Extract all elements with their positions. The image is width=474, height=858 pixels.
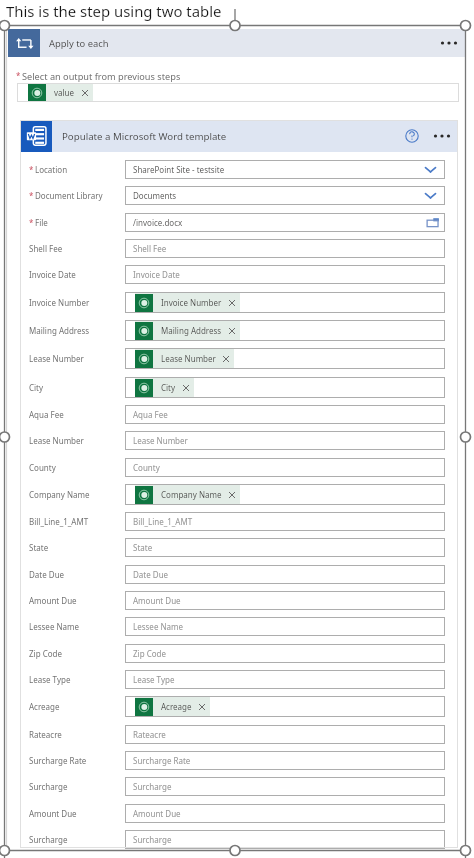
staticText: Lessee Name <box>133 621 184 632</box>
staticText: Mailing Address <box>161 325 222 336</box>
button[interactable]: Rateacre <box>20 725 458 744</box>
button[interactable]: Remove Lease Number <box>221 354 230 363</box>
staticText: * <box>16 70 21 81</box>
staticText: Amount Due <box>133 595 181 606</box>
staticText: Zip Code <box>29 648 62 659</box>
button[interactable]: Acreage <box>20 696 458 717</box>
button[interactable]: Lease Number <box>20 431 458 450</box>
button[interactable]: Bill_Line_1_AMT <box>20 512 458 531</box>
button[interactable]: * <box>20 213 458 232</box>
button[interactable]: Surcharge Rate <box>20 751 458 770</box>
staticText: City <box>29 382 44 393</box>
button[interactable]: Remove Acreage <box>197 702 206 711</box>
button[interactable]: Remove Invoice Number <box>227 298 236 307</box>
button[interactable]: * <box>20 160 458 179</box>
button[interactable]: Amount Due <box>20 591 458 610</box>
button[interactable]: City <box>135 378 194 397</box>
button[interactable]: More commands <box>429 123 455 149</box>
staticText: /invoice.docx <box>133 217 183 228</box>
button[interactable]: Lessee Name <box>20 617 458 636</box>
button[interactable]: Apply to each <box>8 29 465 57</box>
staticText: Date Due <box>133 569 169 580</box>
staticText: Surcharge <box>29 834 68 845</box>
staticText: State <box>29 542 49 553</box>
button[interactable]: Acreage <box>135 697 210 716</box>
staticText: Surcharge <box>133 781 172 792</box>
button[interactable]: Invoice Number <box>20 292 458 313</box>
staticText: Select an output from previous steps <box>22 70 181 83</box>
staticText: Zip Code <box>133 648 166 659</box>
staticText: Apply to each <box>49 37 109 50</box>
button[interactable]: Surcharge <box>20 830 458 849</box>
staticText: Shell Fee <box>29 243 63 254</box>
button[interactable]: Amount Due <box>20 804 458 823</box>
staticText: Date Due <box>29 569 65 580</box>
button[interactable]: Populate a Microsoft Word template <box>20 120 458 152</box>
staticText: Lease Type <box>29 674 71 685</box>
staticText: Acreage <box>161 701 192 712</box>
staticText: Aqua Fee <box>29 409 64 420</box>
staticText: Amount Due <box>29 808 77 819</box>
button[interactable]: Mailing Address <box>20 320 458 341</box>
staticText: State <box>133 542 153 553</box>
staticText: Surcharge <box>29 781 68 792</box>
button[interactable]: Shell Fee <box>20 239 458 258</box>
button[interactable]: More commands <box>435 29 463 57</box>
button[interactable]: * <box>20 186 458 205</box>
button[interactable]: Company Name <box>20 484 458 505</box>
button[interactable]: City <box>20 377 458 398</box>
button[interactable]: Lease Number <box>20 348 458 369</box>
button[interactable]: Remove City <box>181 383 190 392</box>
staticText: Populate a Microsoft Word template <box>62 130 227 143</box>
button[interactable]: value <box>28 84 93 101</box>
button[interactable]: Invoice Number <box>135 293 240 312</box>
staticText: Invoice Number <box>161 297 222 308</box>
button[interactable]: Help <box>399 123 425 149</box>
button[interactable]: Aqua Fee <box>20 405 458 424</box>
staticText: Rateacre <box>133 729 166 740</box>
staticText: * <box>29 164 34 175</box>
staticText: Company Name <box>29 489 90 500</box>
staticText: Surcharge <box>133 834 172 845</box>
staticText: File <box>35 217 48 228</box>
button[interactable]: value <box>17 83 459 102</box>
staticText: Lease Number <box>29 353 84 364</box>
staticText: Bill_Line_1_AMT <box>29 516 89 527</box>
staticText: Invoice Date <box>29 269 76 280</box>
button[interactable]: Mailing Address <box>135 321 240 340</box>
staticText: County <box>133 462 160 473</box>
button[interactable]: Invoice Date <box>20 265 458 284</box>
staticText: SharePoint Site - testsite <box>133 164 225 175</box>
button[interactable]: Remove Company Name <box>227 490 236 499</box>
staticText: County <box>29 462 56 473</box>
staticText: Company Name <box>161 489 222 500</box>
button[interactable]: Company Name <box>135 485 240 504</box>
staticText: Lease Number <box>133 435 188 446</box>
staticText: Amount Due <box>133 808 181 819</box>
staticText: Lease Number <box>29 435 84 446</box>
staticText: This is the step using two table <box>6 1 222 21</box>
button[interactable]: County <box>20 458 458 477</box>
staticText: * <box>29 217 34 228</box>
staticText: Bill_Line_1_AMT <box>133 516 193 527</box>
staticText: value <box>54 87 75 98</box>
staticText: Surcharge Rate <box>133 755 191 766</box>
button[interactable]: Surcharge <box>20 777 458 796</box>
button[interactable]: Remove value <box>80 88 89 97</box>
button[interactable]: Zip Code <box>20 644 458 663</box>
staticText: Shell Fee <box>133 243 167 254</box>
button[interactable]: State <box>20 538 458 557</box>
button[interactable]: Date Due <box>20 565 458 584</box>
staticText: City <box>161 382 176 393</box>
button[interactable]: Remove Mailing Address <box>227 326 236 335</box>
button[interactable]: Lease Type <box>20 670 458 689</box>
staticText: Lease Number <box>161 353 216 364</box>
staticText: Amount Due <box>29 595 77 606</box>
button[interactable]: Lease Number <box>135 349 234 368</box>
staticText: Document Library <box>35 190 103 201</box>
staticText: Acreage <box>29 701 60 712</box>
staticText: Lessee Name <box>29 621 80 632</box>
staticText: Mailing Address <box>29 325 90 336</box>
staticText: Location <box>35 164 68 175</box>
button[interactable]: Browse files <box>426 216 440 230</box>
